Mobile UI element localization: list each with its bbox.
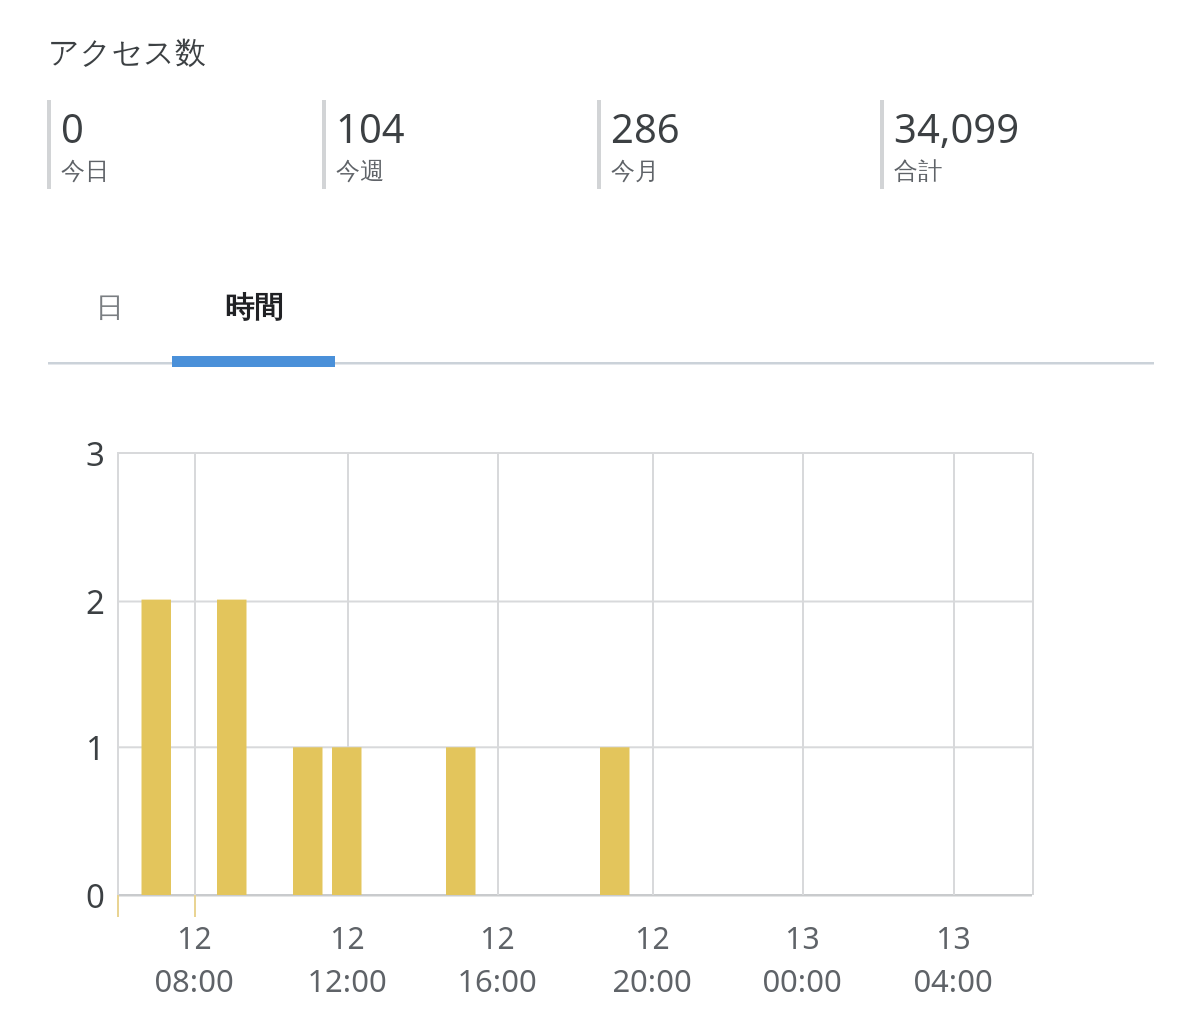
staticText: 2 [86,579,105,624]
staticText: 286 [611,100,680,154]
staticText: 104 [336,100,405,154]
button[interactable]: 104 [322,100,405,189]
staticText: 04:00 [913,959,993,1001]
staticText: 今日 [61,156,109,186]
staticText: 00:00 [762,959,842,1001]
staticText: 12 [330,917,365,958]
staticText: 今週 [336,156,384,186]
staticText: 16:00 [457,959,537,1001]
staticText: 13 [936,917,971,958]
staticText: 0 [86,873,105,918]
button[interactable]: 0 [47,100,109,189]
button[interactable]: 日 [62,268,158,346]
staticText: 1 [86,725,105,770]
staticText: 時間 [225,289,283,326]
staticText: 20:00 [612,959,692,1001]
staticText: 12 [177,917,212,958]
staticText: 13 [785,917,820,958]
staticText: 12:00 [307,959,387,1001]
button[interactable]: 時間 [172,268,335,346]
button[interactable]: 34,099 [880,100,1020,189]
staticText: 34,099 [894,100,1020,154]
staticText: 0 [61,100,84,154]
staticText: アクセス数 [48,33,206,72]
staticText: 12 [480,917,515,958]
staticText: 合計 [894,156,942,186]
staticText: 今月 [611,156,659,186]
staticText: 12 [635,917,670,958]
staticText: 08:00 [154,959,234,1001]
staticText: 3 [86,431,105,476]
button[interactable]: 286 [597,100,680,189]
staticText: 日 [96,290,124,325]
